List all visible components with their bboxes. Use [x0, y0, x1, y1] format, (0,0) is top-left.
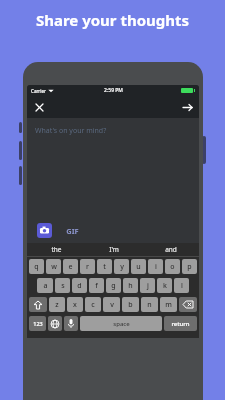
staticText: I'm	[109, 245, 119, 254]
button[interactable]: Send	[179, 99, 195, 115]
button[interactable]: a	[37, 278, 53, 293]
staticText: s	[61, 281, 65, 291]
staticText: a	[43, 281, 48, 291]
staticText: x	[73, 300, 77, 310]
button[interactable]: b	[122, 297, 139, 312]
button[interactable]: f	[89, 278, 104, 293]
staticText: and	[165, 245, 177, 254]
staticText: g	[111, 281, 116, 291]
staticText: j	[147, 281, 149, 291]
staticText: p	[187, 262, 192, 272]
button[interactable]: z	[49, 297, 65, 312]
button[interactable]: Close	[31, 99, 47, 115]
staticText: k	[163, 281, 167, 291]
staticText: space	[113, 320, 130, 328]
staticText: i	[155, 262, 157, 272]
staticText: e	[68, 262, 73, 272]
staticText: 2:59 PM	[104, 87, 123, 94]
button[interactable]: Voice input	[64, 316, 78, 331]
staticText: z	[55, 300, 59, 310]
button[interactable]: x	[67, 297, 83, 312]
staticText: y	[120, 262, 124, 272]
button[interactable]: Shift	[29, 297, 47, 312]
staticText: GIF	[66, 226, 79, 236]
staticText: o	[170, 262, 175, 272]
button[interactable]: 123	[29, 316, 46, 331]
staticText: Share your thoughts	[0, 10, 225, 30]
staticText: n	[147, 300, 152, 310]
button[interactable]: c	[85, 297, 101, 312]
button[interactable]: e	[63, 259, 78, 274]
staticText: v	[110, 300, 114, 310]
staticText: 123	[33, 320, 43, 327]
button[interactable]: l	[174, 278, 189, 293]
staticText: h	[128, 281, 133, 291]
button[interactable]: I'm	[85, 243, 142, 256]
staticText: Carrier	[31, 88, 46, 94]
staticText: b	[128, 300, 133, 310]
staticText: t	[103, 262, 106, 272]
button[interactable]: n	[141, 297, 158, 312]
button[interactable]: k	[157, 278, 172, 293]
button[interactable]: i	[148, 259, 163, 274]
button[interactable]: q	[29, 259, 44, 274]
staticText: l	[181, 281, 183, 291]
button[interactable]: s	[55, 278, 70, 293]
button[interactable]: and	[142, 243, 199, 256]
button[interactable]: p	[182, 259, 197, 274]
button[interactable]: o	[165, 259, 180, 274]
button[interactable]: h	[123, 278, 138, 293]
staticText: c	[91, 300, 95, 310]
staticText: q	[34, 262, 39, 272]
button[interactable]: GIF	[66, 226, 79, 236]
button[interactable]: m	[160, 297, 177, 312]
staticText: m	[165, 300, 172, 310]
button[interactable]: return	[164, 316, 197, 331]
staticText: What's on your mind?	[35, 126, 107, 136]
button[interactable]: d	[72, 278, 87, 293]
button[interactable]: u	[131, 259, 146, 274]
button[interactable]: w	[46, 259, 61, 274]
button[interactable]: r	[80, 259, 95, 274]
button[interactable]: the	[27, 243, 85, 256]
staticText: u	[136, 262, 141, 272]
button[interactable]: g	[106, 278, 121, 293]
button[interactable]: t	[97, 259, 112, 274]
button[interactable]: Emoji	[48, 316, 62, 331]
button[interactable]: v	[103, 297, 120, 312]
staticText: w	[51, 262, 57, 272]
staticText: the	[51, 245, 62, 254]
button[interactable]: y	[114, 259, 129, 274]
staticText: return	[171, 320, 190, 328]
staticText: d	[77, 281, 82, 291]
staticText: r	[86, 262, 89, 272]
button[interactable]: Camera	[37, 223, 52, 238]
button[interactable]: space	[80, 316, 162, 331]
staticText: f	[95, 281, 98, 291]
button[interactable]: j	[140, 278, 155, 293]
button[interactable]: Backspace	[179, 297, 197, 312]
